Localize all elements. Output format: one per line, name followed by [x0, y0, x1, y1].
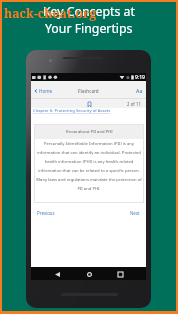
button[interactable]: Chapter 6: Protecting Security of Assets [33, 108, 111, 114]
button[interactable]: Back [51, 268, 63, 280]
staticText: Know about PII and PHI [66, 129, 113, 135]
staticText: 9:19 [135, 74, 145, 81]
button[interactable]: Next [128, 208, 142, 218]
staticText: 2 of 11 [127, 101, 141, 107]
button[interactable]: Text size [135, 86, 144, 95]
button[interactable]: Home [33, 86, 54, 96]
staticText: Aa [136, 87, 143, 94]
staticText: Your Fingertips [45, 20, 133, 37]
staticText: Home [39, 88, 53, 94]
button[interactable]: Bookmark [85, 100, 93, 108]
staticText: Personally Identifiable Information (PII… [34, 141, 144, 191]
button[interactable]: Home [83, 268, 95, 280]
button[interactable]: Previous [35, 208, 57, 218]
staticText: hack-cheat.org [4, 5, 97, 22]
staticText: Flashcard [78, 88, 99, 94]
staticText: Key Concepts at [43, 3, 135, 20]
button[interactable]: Recents [114, 268, 126, 280]
